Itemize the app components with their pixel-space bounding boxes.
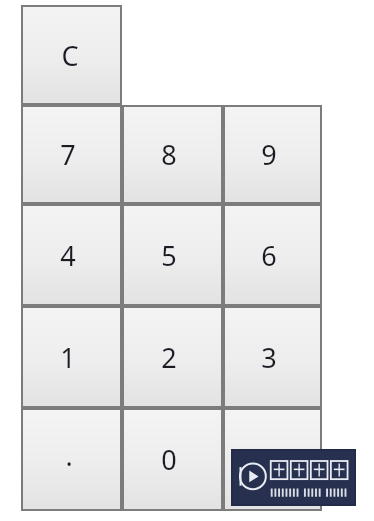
staticText: 7 xyxy=(60,136,76,173)
button[interactable]: 4 xyxy=(21,204,122,306)
button[interactable]: 6 xyxy=(223,204,322,306)
button[interactable] xyxy=(223,408,322,511)
button[interactable]: 7 xyxy=(21,105,122,204)
staticText: 0 xyxy=(161,441,177,478)
staticText: 3 xyxy=(261,339,277,376)
other: Watermark zixue.3066.com xyxy=(232,450,355,505)
button[interactable]: 0 xyxy=(122,408,223,511)
staticText: C xyxy=(61,37,79,74)
button[interactable]: 8 xyxy=(122,105,223,204)
staticText: 9 xyxy=(261,136,277,173)
button[interactable]: 5 xyxy=(122,204,223,306)
staticText: . xyxy=(65,437,73,474)
button[interactable]: C xyxy=(21,5,122,105)
button[interactable]: 1 xyxy=(21,306,122,408)
button[interactable]: 2 xyxy=(122,306,223,408)
staticText: 8 xyxy=(161,136,177,173)
button[interactable]: 9 xyxy=(223,105,322,204)
button[interactable]: . xyxy=(21,408,122,511)
staticText: 2 xyxy=(161,339,177,376)
button[interactable]: 3 xyxy=(223,306,322,408)
staticText: 1 xyxy=(60,339,76,376)
staticText: 5 xyxy=(161,237,177,274)
staticText: 4 xyxy=(60,237,76,274)
staticText: 6 xyxy=(261,237,277,274)
